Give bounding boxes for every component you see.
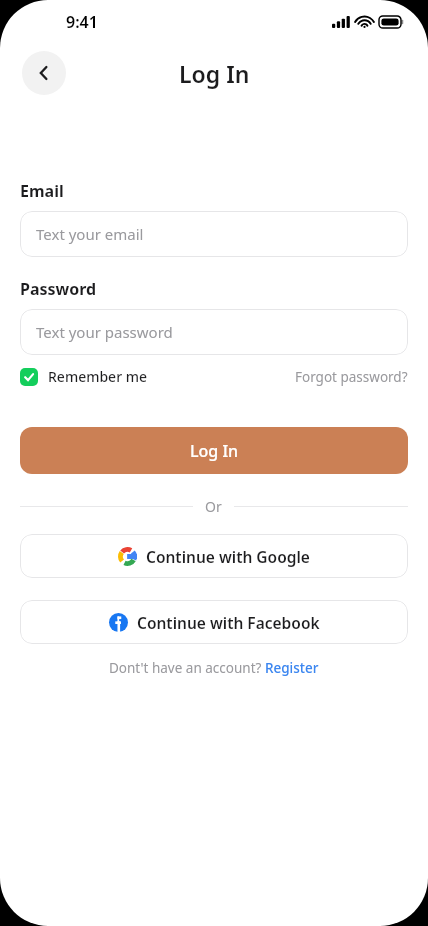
staticText: Continue with Google — [146, 546, 310, 567]
button[interactable]: Forgot password? — [295, 368, 408, 386]
staticText: Text your password — [36, 322, 173, 342]
staticText: Password — [20, 278, 97, 300]
button[interactable]: Dont't have an account? Register — [20, 659, 408, 677]
button[interactable]: Back — [22, 51, 66, 95]
button[interactable]: Log In — [20, 427, 408, 474]
staticText: 9:41 — [66, 11, 98, 33]
staticText: Remember me — [48, 367, 148, 386]
button[interactable]: Text your password — [20, 309, 408, 355]
button[interactable]: Remember me — [20, 367, 148, 386]
staticText: Dont't have an account? Register — [109, 659, 319, 677]
button[interactable]: Continue with Google — [20, 534, 408, 578]
staticText: Email — [20, 180, 64, 202]
staticText: Text your email — [36, 224, 144, 244]
staticText: Or — [205, 497, 222, 516]
staticText: Log In — [190, 440, 239, 462]
staticText: Log In — [179, 58, 250, 89]
button[interactable]: Text your email — [20, 211, 408, 257]
button[interactable]: Continue with Facebook — [20, 600, 408, 644]
staticText: Forgot password? — [295, 368, 408, 386]
staticText: Continue with Facebook — [137, 612, 320, 633]
